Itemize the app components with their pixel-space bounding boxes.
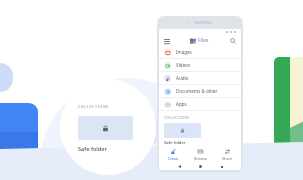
staticText: Apps (176, 101, 187, 107)
button[interactable]: Safe folder (164, 123, 201, 138)
staticText: Clean (168, 156, 178, 161)
staticText: COLLECTIONS (78, 104, 109, 109)
button[interactable]: Clean (159, 149, 187, 161)
staticText: Share (222, 156, 233, 161)
button[interactable]: Browse (187, 149, 214, 161)
staticText: Safe folder (164, 140, 186, 146)
staticText: Safe folder (78, 145, 107, 153)
button[interactable]: Share (214, 149, 241, 161)
button[interactable]: Safe folder (78, 116, 133, 140)
staticText: Videos (176, 62, 191, 68)
button[interactable]: Apps (159, 98, 241, 110)
button[interactable]: Search (229, 37, 237, 45)
button[interactable]: Videos (159, 59, 241, 71)
staticText: COLLECTIONS (164, 116, 190, 120)
staticText: Browse (194, 156, 208, 161)
staticText: Audio (176, 75, 189, 81)
button[interactable]: Menu (163, 37, 171, 45)
button[interactable]: Audio (159, 72, 241, 84)
button[interactable]: Documents & other (159, 85, 241, 97)
staticText: Images (176, 49, 192, 55)
staticText: Files (198, 37, 209, 44)
button[interactable]: Images (159, 46, 241, 58)
staticText: Documents & other (176, 88, 218, 94)
